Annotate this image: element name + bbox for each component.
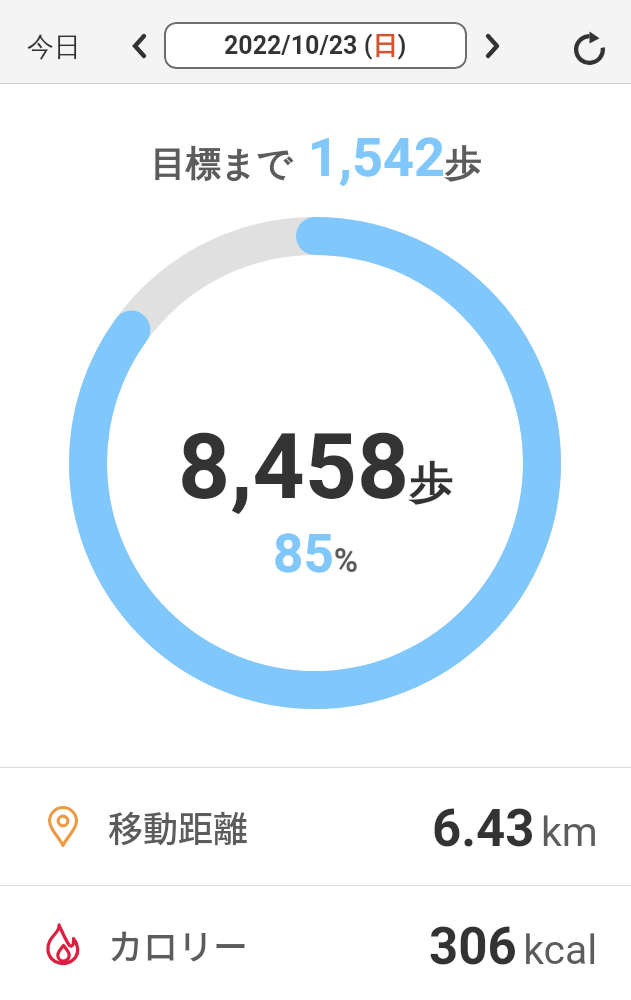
staticText: 移動距離: [108, 801, 249, 852]
button[interactable]: 2022/10/23 (日): [164, 22, 467, 69]
staticText: 2022/10/23 (日): [224, 30, 407, 61]
button[interactable]: 今日: [0, 5, 108, 88]
staticText: 8,458歩: [178, 414, 453, 521]
staticText: 目標まで 1,542歩: [150, 117, 481, 192]
button[interactable]: カロリー: [0, 886, 631, 1000]
button[interactable]: 移動距離: [0, 768, 631, 885]
staticText: カロリー: [108, 919, 249, 970]
staticText: 306 kcal: [429, 917, 598, 977]
button[interactable]: Refresh: [563, 25, 615, 73]
staticText: 85%: [273, 523, 359, 585]
staticText: 6.43 km: [432, 799, 598, 859]
button[interactable]: Next day: [466, 22, 518, 70]
staticText: 今日: [27, 30, 81, 64]
button[interactable]: Previous day: [113, 22, 165, 70]
